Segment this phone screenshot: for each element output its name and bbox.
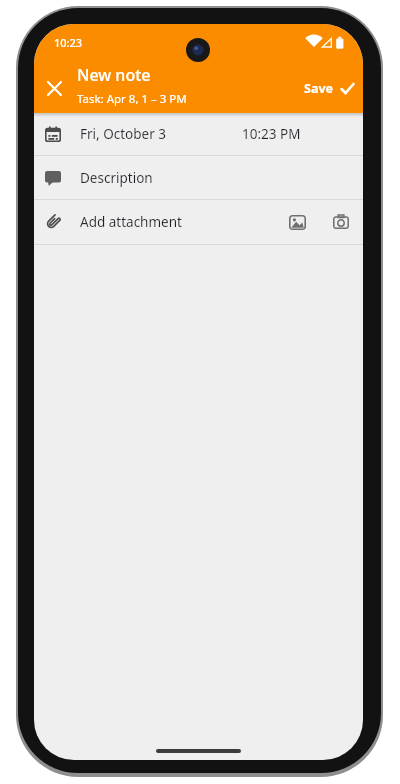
staticText: Fri, October 3 [80, 125, 166, 143]
button[interactable] [333, 215, 349, 229]
button[interactable]: Fri, October 3 [34, 113, 363, 155]
staticText: 10:23 [54, 35, 83, 50]
button[interactable]: Add attachment [34, 200, 363, 244]
staticText: 10:23 PM [242, 125, 301, 143]
staticText: Task: Apr 8, 1 – 3 PM [77, 91, 187, 107]
button[interactable] [289, 215, 306, 230]
button[interactable] [48, 82, 61, 95]
button[interactable]: Save [304, 76, 354, 100]
staticText: Save [304, 80, 333, 97]
staticText: Add attachment [80, 213, 182, 231]
button[interactable]: Description [34, 156, 363, 199]
staticText: New note [77, 64, 151, 86]
staticText: Description [80, 169, 153, 187]
